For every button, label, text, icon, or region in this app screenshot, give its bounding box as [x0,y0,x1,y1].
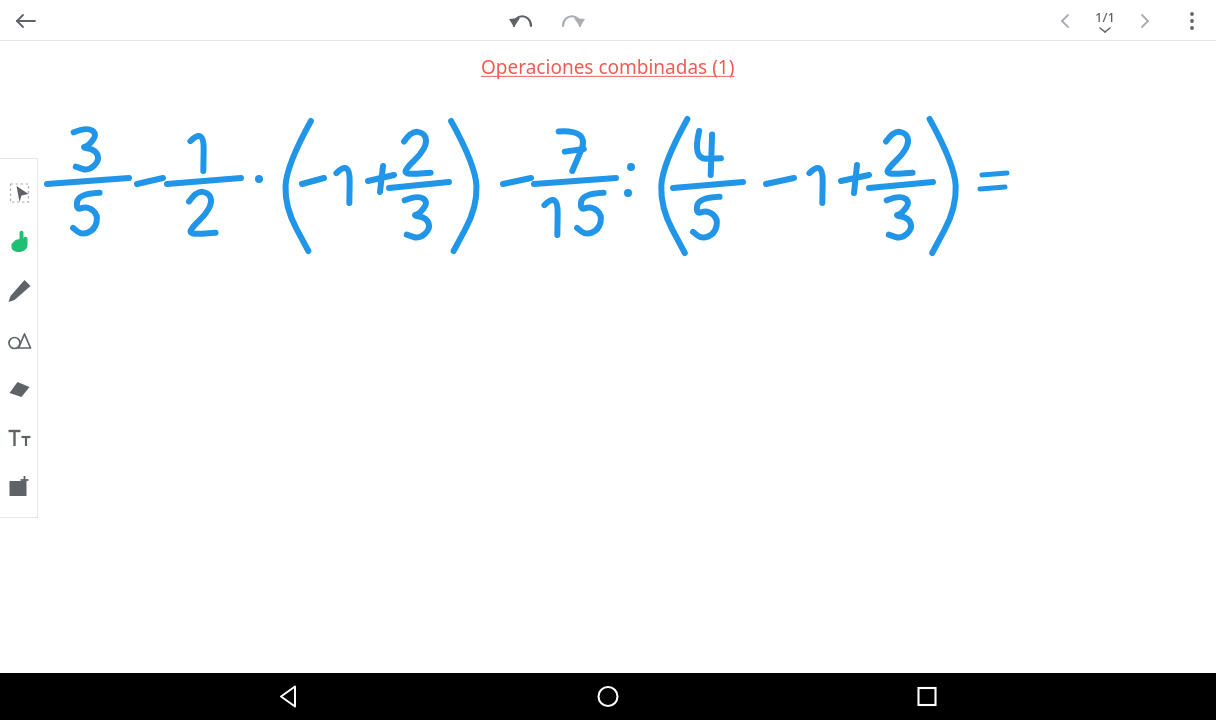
button[interactable]: More options [1174,1,1210,41]
button[interactable]: Eraser [1,369,38,409]
button[interactable]: Back [259,673,319,720]
button[interactable]: Shapes [1,320,38,360]
button[interactable]: Previous page [1048,1,1082,41]
staticText: Operaciones combinadas (1) [481,54,735,80]
button[interactable]: Pan [1,222,38,262]
button[interactable]: Back [6,1,46,41]
button[interactable]: Next page [1128,1,1162,41]
button[interactable]: 1/1 [1082,0,1128,41]
button[interactable]: Recent apps [897,673,957,720]
button[interactable]: Redo [551,1,593,41]
staticText: 1/1 [1095,8,1115,26]
button[interactable]: Text [1,418,38,458]
button[interactable]: Undo [501,1,543,41]
button[interactable]: Select [1,173,38,213]
button[interactable]: Pen [1,271,38,311]
button[interactable]: Insert image [1,467,38,507]
button[interactable]: Home [578,673,638,720]
